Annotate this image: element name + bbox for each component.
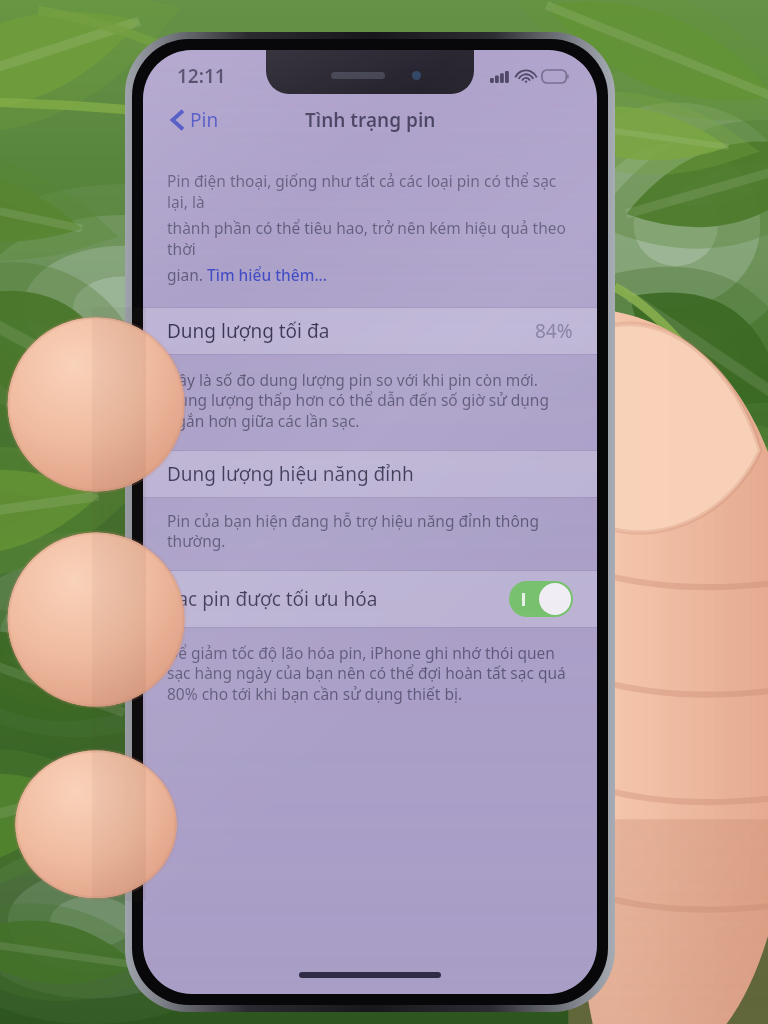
staticText: gian. bbox=[167, 264, 207, 285]
staticText: Tìm hiểu thêm... bbox=[207, 264, 328, 285]
staticText: thành phần có thể tiêu hao, trở nên kém … bbox=[167, 217, 573, 259]
button[interactable]: Dung lượng hiệu năng đỉnh bbox=[143, 451, 597, 497]
button[interactable]: Tìm hiểu thêm... bbox=[207, 264, 328, 285]
staticText: Đây là số đo dung lượng pin so với khi p… bbox=[167, 369, 573, 432]
staticText: Tình trạng pin bbox=[305, 107, 436, 133]
button[interactable]: Sạc pin được tối ưu hóa, bật bbox=[509, 581, 573, 617]
staticText: Pin của bạn hiện đang hỗ trợ hiệu năng đ… bbox=[167, 510, 573, 552]
button[interactable]: Sạc pin được tối ưu hóa bbox=[143, 571, 597, 627]
staticText: 84% bbox=[535, 318, 573, 344]
staticText: Pin bbox=[190, 107, 219, 133]
staticText: Sạc pin được tối ưu hóa bbox=[167, 586, 509, 612]
button[interactable]: Pin bbox=[165, 103, 225, 137]
staticText: 12:11 bbox=[177, 63, 226, 89]
button[interactable]: Dung lượng tối đa bbox=[143, 308, 597, 354]
staticText: Để giảm tốc độ lão hóa pin, iPhone ghi n… bbox=[167, 642, 573, 705]
staticText: Dung lượng hiệu năng đỉnh bbox=[167, 461, 414, 487]
staticText: Dung lượng tối đa bbox=[167, 318, 535, 344]
staticText: Pin điện thoại, giống như tất cả các loạ… bbox=[167, 170, 573, 212]
